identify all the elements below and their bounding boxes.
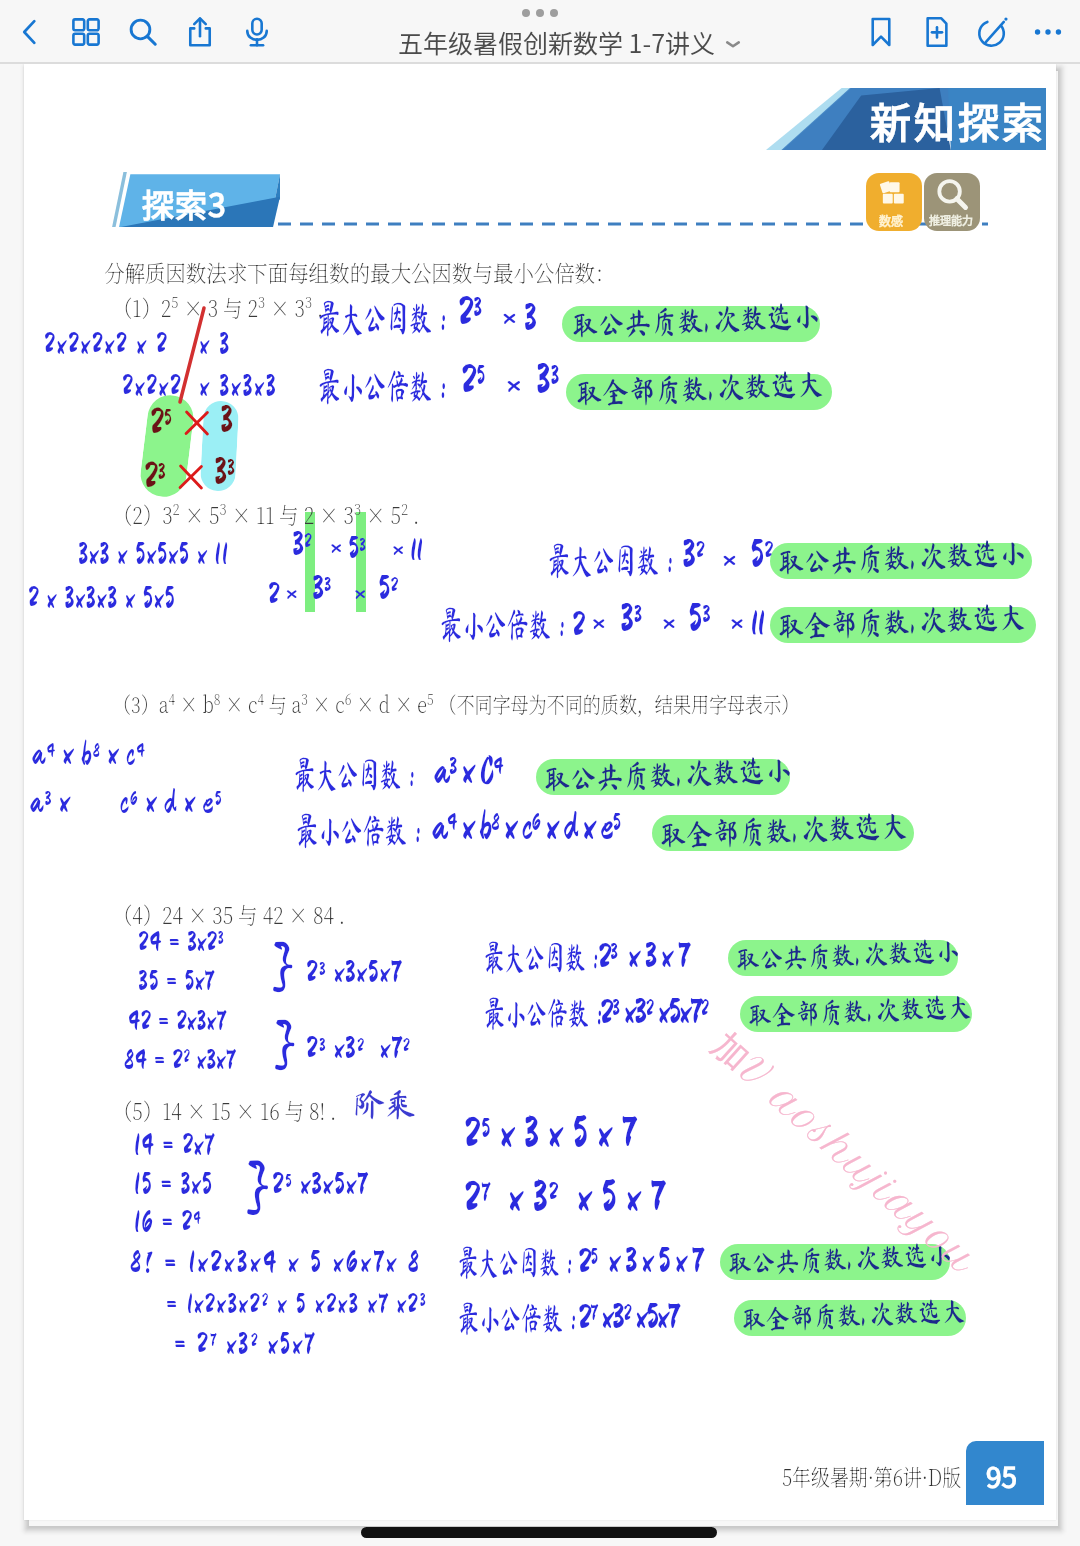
button[interactable]: Annotate [967,6,1019,58]
staticText: × [662,607,676,641]
staticText: 23 [144,458,166,494]
staticText: 取公共质数, 次数选小 [735,935,960,973]
staticText: 33 [312,572,332,605]
staticText: a3 x [30,786,71,818]
staticText: 23 x32 x5x72 [600,994,708,1029]
staticText: （4）24 × 35 与 42 × 84 . [113,898,346,931]
staticText: （5）14 × 15 × 16 与 8! . [113,1094,336,1127]
staticText: 最大公因数： [294,755,423,792]
staticText: } [274,1018,297,1068]
staticText: 2 x 3x3x3 x 5x5 [28,584,177,612]
staticText: a4 x b8 x c4 [32,738,146,770]
staticText: 最大公因数： [484,939,606,974]
button[interactable]: 五年级暑假创新数学 1-7讲义 [398,24,741,60]
staticText: 33 [214,454,235,490]
staticText: c6 x d x e5 [120,786,223,818]
staticText: 32 [682,536,705,574]
staticText: 取全部质数, 次数选大 [659,809,909,851]
button[interactable]: Search [117,6,169,58]
staticText: 2x2x2x2 x 2 [44,330,170,358]
staticText: 五年级暑假创新数学 1-7讲义 [398,24,716,60]
staticText: = 1x2x3x22 x 5 x2x3 x7 x23 [166,1290,428,1317]
staticText: 23 x32 x72 [306,1034,412,1064]
staticText: 27 x32 x5x7 [578,1299,679,1334]
staticText: 加V aoshujiayou [703,1022,987,1284]
staticText: 分解质因数法求下面每组数的最大公因数与最小公倍数： [104,256,616,289]
staticText: 2x2x2 [122,372,183,400]
staticText: 5年级暑期·第6讲·D版 [782,1460,962,1493]
staticText: × 11 [730,607,765,641]
staticText: 2 × [572,607,606,641]
staticText: 32 [292,528,312,561]
button[interactable]: Back [4,6,56,58]
staticText: 53 [688,600,711,638]
staticText: 52 [750,536,773,574]
staticText: 25 [150,404,172,440]
staticText: 取全部质数, 次数选大 [741,1295,966,1333]
staticText: 35 = 5x7 [138,967,215,994]
staticText: 最小公倍数： [318,367,455,405]
staticText: 23 [458,292,482,332]
staticText: 33 [620,600,642,638]
staticText: a3 x C4 [434,752,503,790]
staticText: 52 [378,572,398,605]
staticText: 推理能力 [929,212,973,228]
staticText: × [354,580,366,610]
staticText: （1）25 × 3 与 23 × 33 . [113,290,324,323]
staticText: 3x3 x 5x5x5 x 11 [78,540,230,568]
staticText: 探索3 [142,180,227,226]
staticText: 24 = 3x23 [138,928,225,955]
staticText: 数感 [879,212,904,229]
staticText: 取全部质数, 次数选大 [747,991,972,1029]
staticText: = 27 x32 x5x7 [174,1329,317,1358]
staticText: × 53 [330,534,366,564]
staticText: × 3 [502,300,537,336]
staticText: 16 = 24 [134,1208,203,1236]
staticText: 取全部质数, 次数选大 [575,367,825,409]
staticText: 取公共质数, 次数选小 [543,753,793,795]
button[interactable]: Thumbnails [60,6,112,58]
staticText: （2）32 × 53 × 11 与 2 × 33 × 52 . [113,497,420,530]
staticText: 阶乘 [354,1088,417,1120]
staticText: 3 [220,402,233,438]
staticText: 33 [536,360,560,400]
staticText: 8! = 1x2x3x4 x 5 x6x7x 8 [130,1248,423,1278]
staticText: 新知探索 [870,90,1046,149]
staticText: 取公共质数, 次数选小 [571,299,821,341]
button[interactable]: Bookmark [855,6,907,58]
staticText: } [246,1158,271,1212]
staticText: 25 x3x5x7 [272,1170,369,1200]
staticText: 25 x 3 x 5 x 7 [578,1243,703,1278]
staticText: 15 = 3x5 [134,1170,214,1198]
staticText: × [722,542,737,578]
staticText: a4 x b8 x c6 x d x e5 [432,808,621,846]
staticText: × 11 [392,536,423,566]
button[interactable]: More options [1022,6,1074,58]
staticText: } [272,940,295,990]
staticText: 95 [986,1456,1018,1497]
staticText: x 3x3x3 [200,372,279,400]
staticText: 最小公倍数： [296,811,429,848]
staticText: 取公共质数, 次数选小 [777,536,1027,578]
staticText: 最大公因数： [548,541,681,578]
staticText: × [506,367,522,405]
staticText: 25 [461,360,486,400]
staticText: （3）a4 × b8 × c4 与 a3 × c6 × d × e5 （不同字母… [113,688,799,720]
staticText: 23 x3x5x7 [306,958,403,988]
staticText: 2 × [268,580,298,610]
staticText: 取全部质数, 次数选大 [777,600,1027,642]
staticText: x 3 [200,330,232,358]
button[interactable]: Voice [231,6,283,58]
staticText: 27 x 32 x 5 x 7 [464,1176,666,1218]
staticText: 最小公倍数： [458,1300,585,1335]
staticText: 最小公倍数： [484,995,611,1030]
staticText: 最小公倍数： [440,605,573,642]
staticText: 84 = 22 x3x7 [124,1046,237,1073]
staticText: 最大公因数： [318,299,455,337]
staticText: 14 = 2x7 [134,1131,216,1159]
staticText: 25 x 3 x 5 x 7 [464,1112,637,1154]
staticText: 最大公因数： [458,1244,580,1279]
button[interactable]: Add page [911,6,963,58]
staticText: 取公共质数, 次数选小 [727,1239,952,1277]
button[interactable]: Share [174,6,226,58]
